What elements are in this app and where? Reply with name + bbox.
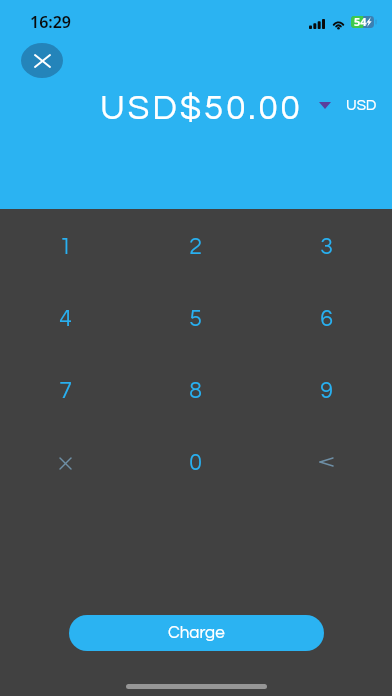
staticText: 3 — [320, 235, 333, 259]
staticText: USD — [346, 98, 377, 113]
staticText: 0 — [189, 451, 202, 475]
staticText: 4 — [59, 307, 72, 331]
button[interactable]: 5 — [130, 281, 261, 353]
button[interactable]: 9 — [261, 353, 392, 425]
button[interactable]: 2 — [130, 209, 261, 281]
button[interactable]: 8 — [130, 353, 261, 425]
staticText: 9 — [320, 379, 333, 403]
button[interactable]: Close — [21, 43, 63, 78]
staticText: 2 — [189, 235, 202, 259]
staticText: 54 — [354, 14, 367, 29]
button[interactable]: Charge — [69, 615, 324, 651]
staticText: Charge — [168, 624, 225, 642]
button[interactable]: Backspace — [261, 425, 392, 497]
staticText: 8 — [189, 379, 202, 403]
staticText: 6 — [320, 307, 333, 331]
button[interactable]: Clear — [0, 425, 130, 497]
button[interactable]: 4 — [0, 281, 130, 353]
staticText: 16:29 — [30, 11, 72, 33]
staticText: 1 — [59, 235, 72, 259]
button[interactable]: Select currency — [308, 92, 342, 118]
button[interactable]: 0 — [130, 425, 261, 497]
button[interactable]: 6 — [261, 281, 392, 353]
button[interactable]: 7 — [0, 353, 130, 425]
button[interactable]: 3 — [261, 209, 392, 281]
staticText: 5 — [189, 307, 202, 331]
button[interactable]: USD$50.00 — [100, 90, 303, 126]
staticText: 7 — [59, 379, 72, 403]
button[interactable]: 1 — [0, 209, 130, 281]
